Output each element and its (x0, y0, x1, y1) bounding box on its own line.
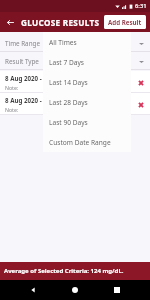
staticText: GLUCOSE RESULTS (21, 17, 100, 28)
button[interactable]: Add Result (104, 15, 146, 29)
button[interactable]: Last 28 Days (43, 92, 131, 112)
staticText: Custom Date Range (49, 138, 111, 147)
button[interactable]: Custom Date Range (43, 132, 131, 152)
staticText: Result Type (5, 57, 39, 66)
staticText: All Times (49, 38, 77, 47)
staticText: 8 Aug 2020 - 09:25 (5, 74, 60, 82)
button[interactable]: Last 14 Days (43, 72, 131, 92)
staticText: 8 Aug 2020 - 08:30 (5, 96, 60, 104)
staticText: Last 90 Days (49, 118, 88, 127)
button[interactable]: Last 7 Days (43, 52, 131, 72)
button[interactable]: Back (0, 12, 21, 32)
button[interactable]: Result Type (0, 52, 150, 70)
staticText: Note: (5, 84, 19, 91)
button[interactable]: Delete (135, 77, 146, 88)
button[interactable]: Delete (135, 99, 146, 110)
staticText: Last 28 Days (49, 98, 88, 107)
staticText: Time Range (5, 39, 40, 48)
button[interactable]: Home (66, 281, 84, 299)
staticText: Last 7 Days (49, 58, 84, 67)
button[interactable]: Recents (108, 281, 126, 299)
button[interactable]: 8 Aug 2020 - 08:30 (0, 93, 150, 115)
staticText: Note: (5, 106, 19, 113)
button[interactable]: Time Range (0, 34, 150, 52)
button[interactable]: All Times (43, 32, 131, 52)
button[interactable]: Last 90 Days (43, 112, 131, 132)
staticText: Add Result (108, 18, 142, 26)
staticText: Last 14 Days (49, 78, 88, 87)
staticText: 6:31 (135, 2, 147, 10)
staticText: Average of Selected Criteria: 124 mg/dL. (4, 267, 124, 275)
button[interactable]: 8 Aug 2020 - 09:25 (0, 71, 150, 93)
button[interactable]: Back (24, 281, 42, 299)
